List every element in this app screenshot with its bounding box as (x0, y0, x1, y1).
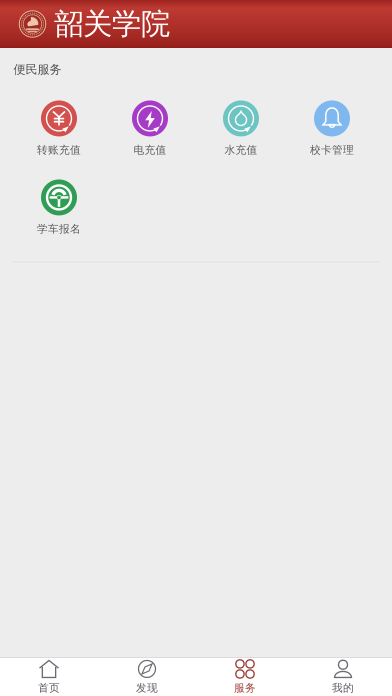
button[interactable]: 我的 (294, 658, 392, 696)
button[interactable]: 发现 (98, 658, 196, 696)
button[interactable]: 校卡管理 (290, 99, 374, 157)
staticText: 电充值 (133, 143, 166, 156)
staticText: 服务 (234, 681, 256, 694)
staticText: 我的 (332, 681, 354, 694)
staticText: 首页 (38, 681, 60, 694)
button[interactable]: 电充值 (108, 99, 192, 157)
staticText: 便民服务 (13, 62, 61, 77)
staticText: 转账充值 (37, 143, 81, 156)
button[interactable]: 水充值 (199, 99, 283, 157)
staticText: 校卡管理 (310, 143, 354, 156)
staticText: 学车报名 (37, 222, 81, 235)
button[interactable]: 转账充值 (17, 99, 101, 157)
button[interactable]: 首页 (0, 658, 98, 696)
staticText: 水充值 (224, 143, 257, 156)
button[interactable]: 学车报名 (17, 178, 101, 236)
staticText: 发现 (136, 681, 158, 694)
button[interactable]: 服务 (196, 658, 294, 696)
button[interactable]: 韶关学院 (19, 10, 46, 37)
staticText: 韶关学院 (54, 6, 170, 42)
